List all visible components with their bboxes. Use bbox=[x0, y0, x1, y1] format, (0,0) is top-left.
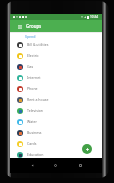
button[interactable]: Business bbox=[10, 127, 102, 138]
staticText: Groups bbox=[26, 23, 42, 29]
button[interactable]: Electric bbox=[10, 50, 102, 61]
button[interactable]: Rent a house bbox=[10, 94, 102, 105]
staticText: Internet bbox=[27, 75, 41, 80]
button[interactable]: Cards bbox=[10, 138, 102, 149]
button[interactable]: Gas bbox=[10, 61, 102, 72]
staticText: Television bbox=[27, 108, 44, 113]
staticText: Water bbox=[27, 119, 37, 124]
button[interactable]: Education bbox=[10, 149, 102, 160]
staticText: Education bbox=[27, 152, 44, 157]
button[interactable]: Recent apps bbox=[76, 161, 84, 169]
button[interactable]: Water bbox=[10, 116, 102, 127]
button[interactable]: Television bbox=[10, 105, 102, 116]
staticText: Bill & utilities bbox=[27, 42, 49, 47]
staticText: Business bbox=[27, 130, 42, 135]
staticText: Cards bbox=[27, 141, 37, 146]
button[interactable]: Home bbox=[51, 161, 59, 169]
staticText: Phone bbox=[27, 86, 38, 91]
button[interactable]: Back bbox=[28, 161, 36, 169]
button[interactable]: Bill & utilities bbox=[10, 39, 102, 50]
button[interactable]: Internet bbox=[10, 72, 102, 83]
staticText: Spend bbox=[25, 34, 36, 39]
staticText: Gas bbox=[27, 64, 34, 69]
staticText: Rent a house bbox=[27, 97, 49, 102]
button[interactable]: Add bbox=[82, 144, 92, 154]
staticText: Electric bbox=[27, 53, 39, 58]
button[interactable]: Open navigation menu bbox=[16, 23, 23, 30]
button[interactable]: Phone bbox=[10, 83, 102, 94]
staticText: 10:34 bbox=[90, 15, 99, 19]
